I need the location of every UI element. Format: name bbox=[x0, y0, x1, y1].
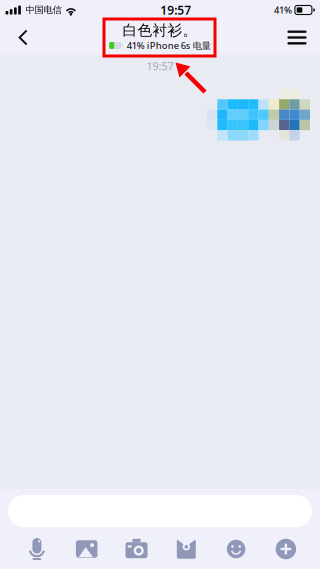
staticText: 41% bbox=[274, 4, 292, 16]
button[interactable]: Back bbox=[4, 20, 42, 55]
staticText: 19:57 bbox=[160, 2, 191, 18]
button[interactable]: Voice message bbox=[12, 535, 62, 563]
staticText: 白色衬衫。 bbox=[122, 21, 197, 39]
staticText: 19:57 bbox=[146, 59, 173, 73]
button[interactable]: Photos bbox=[62, 535, 112, 563]
button[interactable]: Camera bbox=[112, 535, 161, 563]
button[interactable]: Stickers bbox=[211, 535, 261, 563]
button[interactable]: More bbox=[261, 535, 311, 563]
button[interactable]: Red packet bbox=[161, 535, 211, 563]
button[interactable] bbox=[0, 489, 320, 527]
staticText: 中国电信 bbox=[25, 4, 61, 16]
button[interactable]: Menu bbox=[278, 20, 316, 55]
staticText: 41% iPhone 6s 电量 bbox=[127, 39, 211, 52]
